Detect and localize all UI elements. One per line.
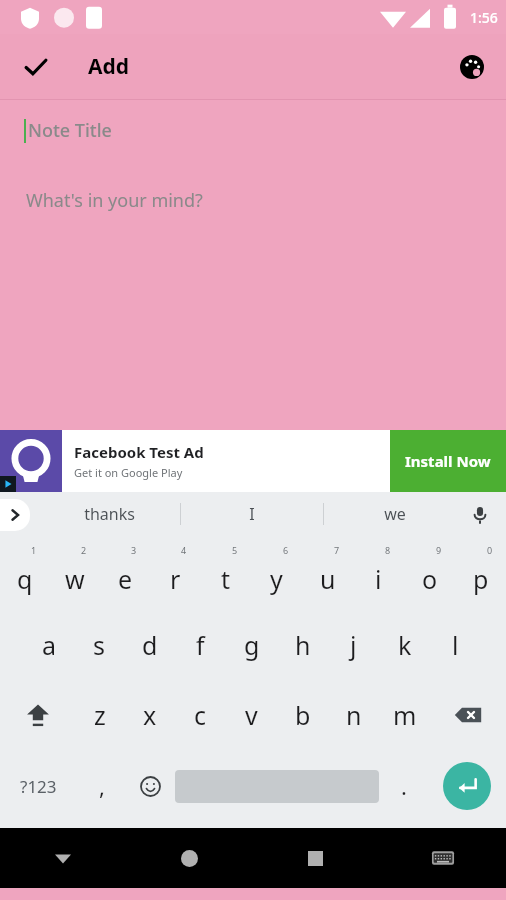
staticText: n xyxy=(346,698,362,732)
button[interactable]: More suggestions xyxy=(0,499,30,531)
staticText: ?123 xyxy=(20,775,57,798)
staticText: x xyxy=(143,698,157,732)
button[interactable]: Facebook Test Ad xyxy=(0,430,506,492)
button[interactable]: b xyxy=(277,680,328,750)
staticText: I xyxy=(249,503,255,525)
staticText: Add xyxy=(88,52,130,81)
staticText: 0 xyxy=(487,544,493,556)
button[interactable]: 7 xyxy=(302,538,353,610)
staticText: u xyxy=(320,562,336,596)
staticText: 5 xyxy=(232,544,238,556)
button[interactable]: Save note xyxy=(12,43,60,91)
button[interactable]: Emoji xyxy=(126,750,175,822)
button[interactable]: What's in your mind? xyxy=(26,188,506,213)
button[interactable]: Note Title xyxy=(28,118,112,143)
button[interactable]: z xyxy=(75,680,125,750)
button[interactable]: h xyxy=(277,610,328,680)
staticText: v xyxy=(245,698,258,732)
staticText: 4 xyxy=(181,544,187,556)
button[interactable]: 6 xyxy=(251,538,302,610)
button[interactable]: 3 xyxy=(100,538,150,610)
button[interactable]: Enter xyxy=(428,750,506,822)
button[interactable]: f xyxy=(175,610,226,680)
staticText: z xyxy=(94,698,106,732)
button[interactable]: Voice input xyxy=(460,495,500,535)
button[interactable]: Shift xyxy=(0,680,75,750)
button[interactable]: thanks xyxy=(38,492,180,536)
staticText: o xyxy=(422,562,438,596)
button[interactable]: we xyxy=(324,492,466,536)
staticText: w xyxy=(65,562,85,596)
button[interactable]: Home xyxy=(126,828,252,888)
button[interactable]: g xyxy=(226,610,277,680)
staticText: c xyxy=(194,698,207,732)
staticText: g xyxy=(244,628,260,662)
staticText: l xyxy=(452,628,459,662)
button[interactable]: , xyxy=(77,750,126,822)
button[interactable]: 5 xyxy=(200,538,251,610)
staticText: e xyxy=(118,562,133,596)
staticText: k xyxy=(398,628,412,662)
staticText: s xyxy=(93,628,105,662)
button[interactable]: Backspace xyxy=(430,680,506,750)
staticText: a xyxy=(42,628,57,662)
staticText: Install Now xyxy=(405,451,491,471)
button[interactable]: c xyxy=(175,680,226,750)
staticText: b xyxy=(295,698,311,732)
button[interactable]: 4 xyxy=(150,538,200,610)
staticText: 1 xyxy=(31,544,37,556)
staticText: 3 xyxy=(131,544,137,556)
button[interactable]: Install Now xyxy=(390,430,506,492)
button[interactable]: v xyxy=(226,680,277,750)
button[interactable]: 2 xyxy=(50,538,100,610)
staticText: Facebook Test Ad xyxy=(74,442,204,462)
button[interactable]: Back xyxy=(0,828,126,888)
button[interactable]: Recents xyxy=(252,828,379,888)
button[interactable]: s xyxy=(74,610,124,680)
staticText: p xyxy=(473,562,489,596)
staticText: y xyxy=(270,562,283,596)
button[interactable]: 9 xyxy=(404,538,455,610)
button[interactable]: 0 xyxy=(455,538,506,610)
button[interactable]: j xyxy=(328,610,379,680)
button[interactable]: a xyxy=(24,610,74,680)
button[interactable]: 1 xyxy=(0,538,50,610)
button[interactable]: 8 xyxy=(353,538,404,610)
staticText: 2 xyxy=(81,544,87,556)
staticText: r xyxy=(170,562,181,596)
staticText: Get it on Google Play xyxy=(74,465,183,480)
button[interactable]: Space xyxy=(175,750,379,822)
staticText: t xyxy=(221,562,231,596)
staticText: m xyxy=(393,698,417,732)
button[interactable]: I xyxy=(181,492,323,536)
button[interactable]: l xyxy=(430,610,481,680)
staticText: 1:56 xyxy=(470,8,498,27)
staticText: 9 xyxy=(436,544,442,556)
staticText: i xyxy=(375,562,382,596)
button[interactable]: Switch keyboard xyxy=(379,828,506,888)
button[interactable]: n xyxy=(328,680,379,750)
button[interactable]: k xyxy=(379,610,430,680)
button[interactable]: Change color xyxy=(448,43,496,91)
staticText: q xyxy=(17,562,33,596)
button[interactable]: . xyxy=(379,750,428,822)
staticText: 8 xyxy=(385,544,391,556)
staticText: we xyxy=(384,503,406,525)
staticText: h xyxy=(295,628,311,662)
button[interactable]: ?123 xyxy=(0,750,77,822)
staticText: , xyxy=(99,771,105,801)
button[interactable]: d xyxy=(124,610,175,680)
staticText: 6 xyxy=(283,544,289,556)
staticText: thanks xyxy=(84,503,135,525)
staticText: 7 xyxy=(334,544,340,556)
staticText: f xyxy=(196,628,205,662)
button[interactable]: x xyxy=(125,680,175,750)
button[interactable]: m xyxy=(379,680,430,750)
staticText: . xyxy=(401,771,407,801)
staticText: j xyxy=(350,628,357,662)
staticText: d xyxy=(142,628,158,662)
